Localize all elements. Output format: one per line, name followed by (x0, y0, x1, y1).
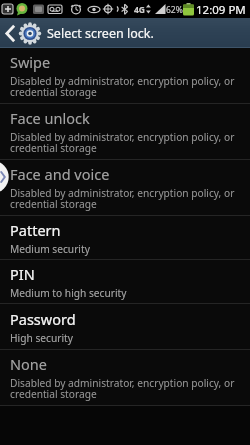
button[interactable]: PIN (0, 260, 250, 303)
staticText: High security (10, 331, 73, 345)
staticText: Password (10, 309, 76, 329)
button[interactable]: Face and voice (0, 160, 250, 215)
button[interactable]: Select screen lock. (0, 18, 250, 48)
staticText: Select screen lock. (47, 25, 154, 42)
staticText: Pattern (10, 220, 61, 240)
staticText: Disabled by administrator, encryption po… (10, 74, 235, 99)
button[interactable]: None (0, 350, 250, 405)
staticText: Medium security (10, 242, 90, 256)
staticText: Face unlock (10, 108, 90, 128)
button[interactable]: Password (0, 304, 250, 349)
staticText: Face and voice (10, 164, 110, 184)
staticText: 4G (134, 4, 146, 16)
staticText: 12:09 PM (196, 2, 246, 18)
staticText: Disabled by administrator, encryption po… (10, 130, 235, 155)
staticText: Swipe (10, 52, 51, 72)
staticText: None (10, 354, 47, 374)
button[interactable]: Pattern (0, 216, 250, 259)
button[interactable]: Swipe (0, 48, 250, 103)
button[interactable]: Face unlock (0, 104, 250, 159)
staticText: PIN (10, 264, 35, 284)
staticText: Disabled by administrator, encryption po… (10, 376, 235, 401)
staticText: 62% (166, 4, 183, 16)
staticText: Medium to high security (10, 286, 127, 300)
staticText: Disabled by administrator, encryption po… (10, 186, 235, 211)
